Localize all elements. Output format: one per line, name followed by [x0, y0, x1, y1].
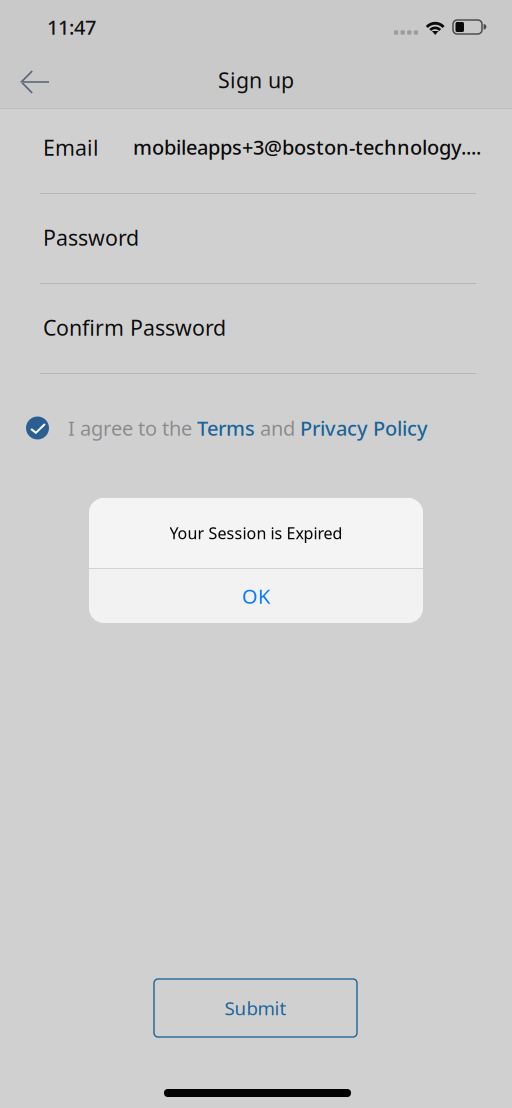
- staticText: Email: [43, 133, 99, 162]
- button[interactable]: Confirm Password: [40, 283, 476, 372]
- staticText: I agree to the: [68, 415, 197, 441]
- button[interactable]: Back: [4, 57, 64, 105]
- button[interactable]: OK: [89, 569, 423, 623]
- staticText: OK: [242, 583, 270, 609]
- staticText: Confirm Password: [43, 313, 226, 342]
- button[interactable]: I agree to the: [26, 406, 446, 450]
- staticText: Your Session is Expired: [169, 522, 342, 544]
- staticText: Password: [43, 223, 139, 252]
- staticText: and: [255, 415, 300, 441]
- staticText: mobileapps+3@boston-technology....: [133, 134, 481, 160]
- staticText: Privacy Policy: [300, 415, 428, 441]
- staticText: Sign up: [218, 66, 294, 94]
- staticText: Submit: [224, 996, 286, 1020]
- button[interactable]: Submit: [154, 979, 357, 1037]
- staticText: Terms: [197, 415, 255, 441]
- button[interactable]: Email: [40, 103, 476, 192]
- button[interactable]: Password: [40, 193, 476, 282]
- staticText: 11:47: [47, 14, 96, 40]
